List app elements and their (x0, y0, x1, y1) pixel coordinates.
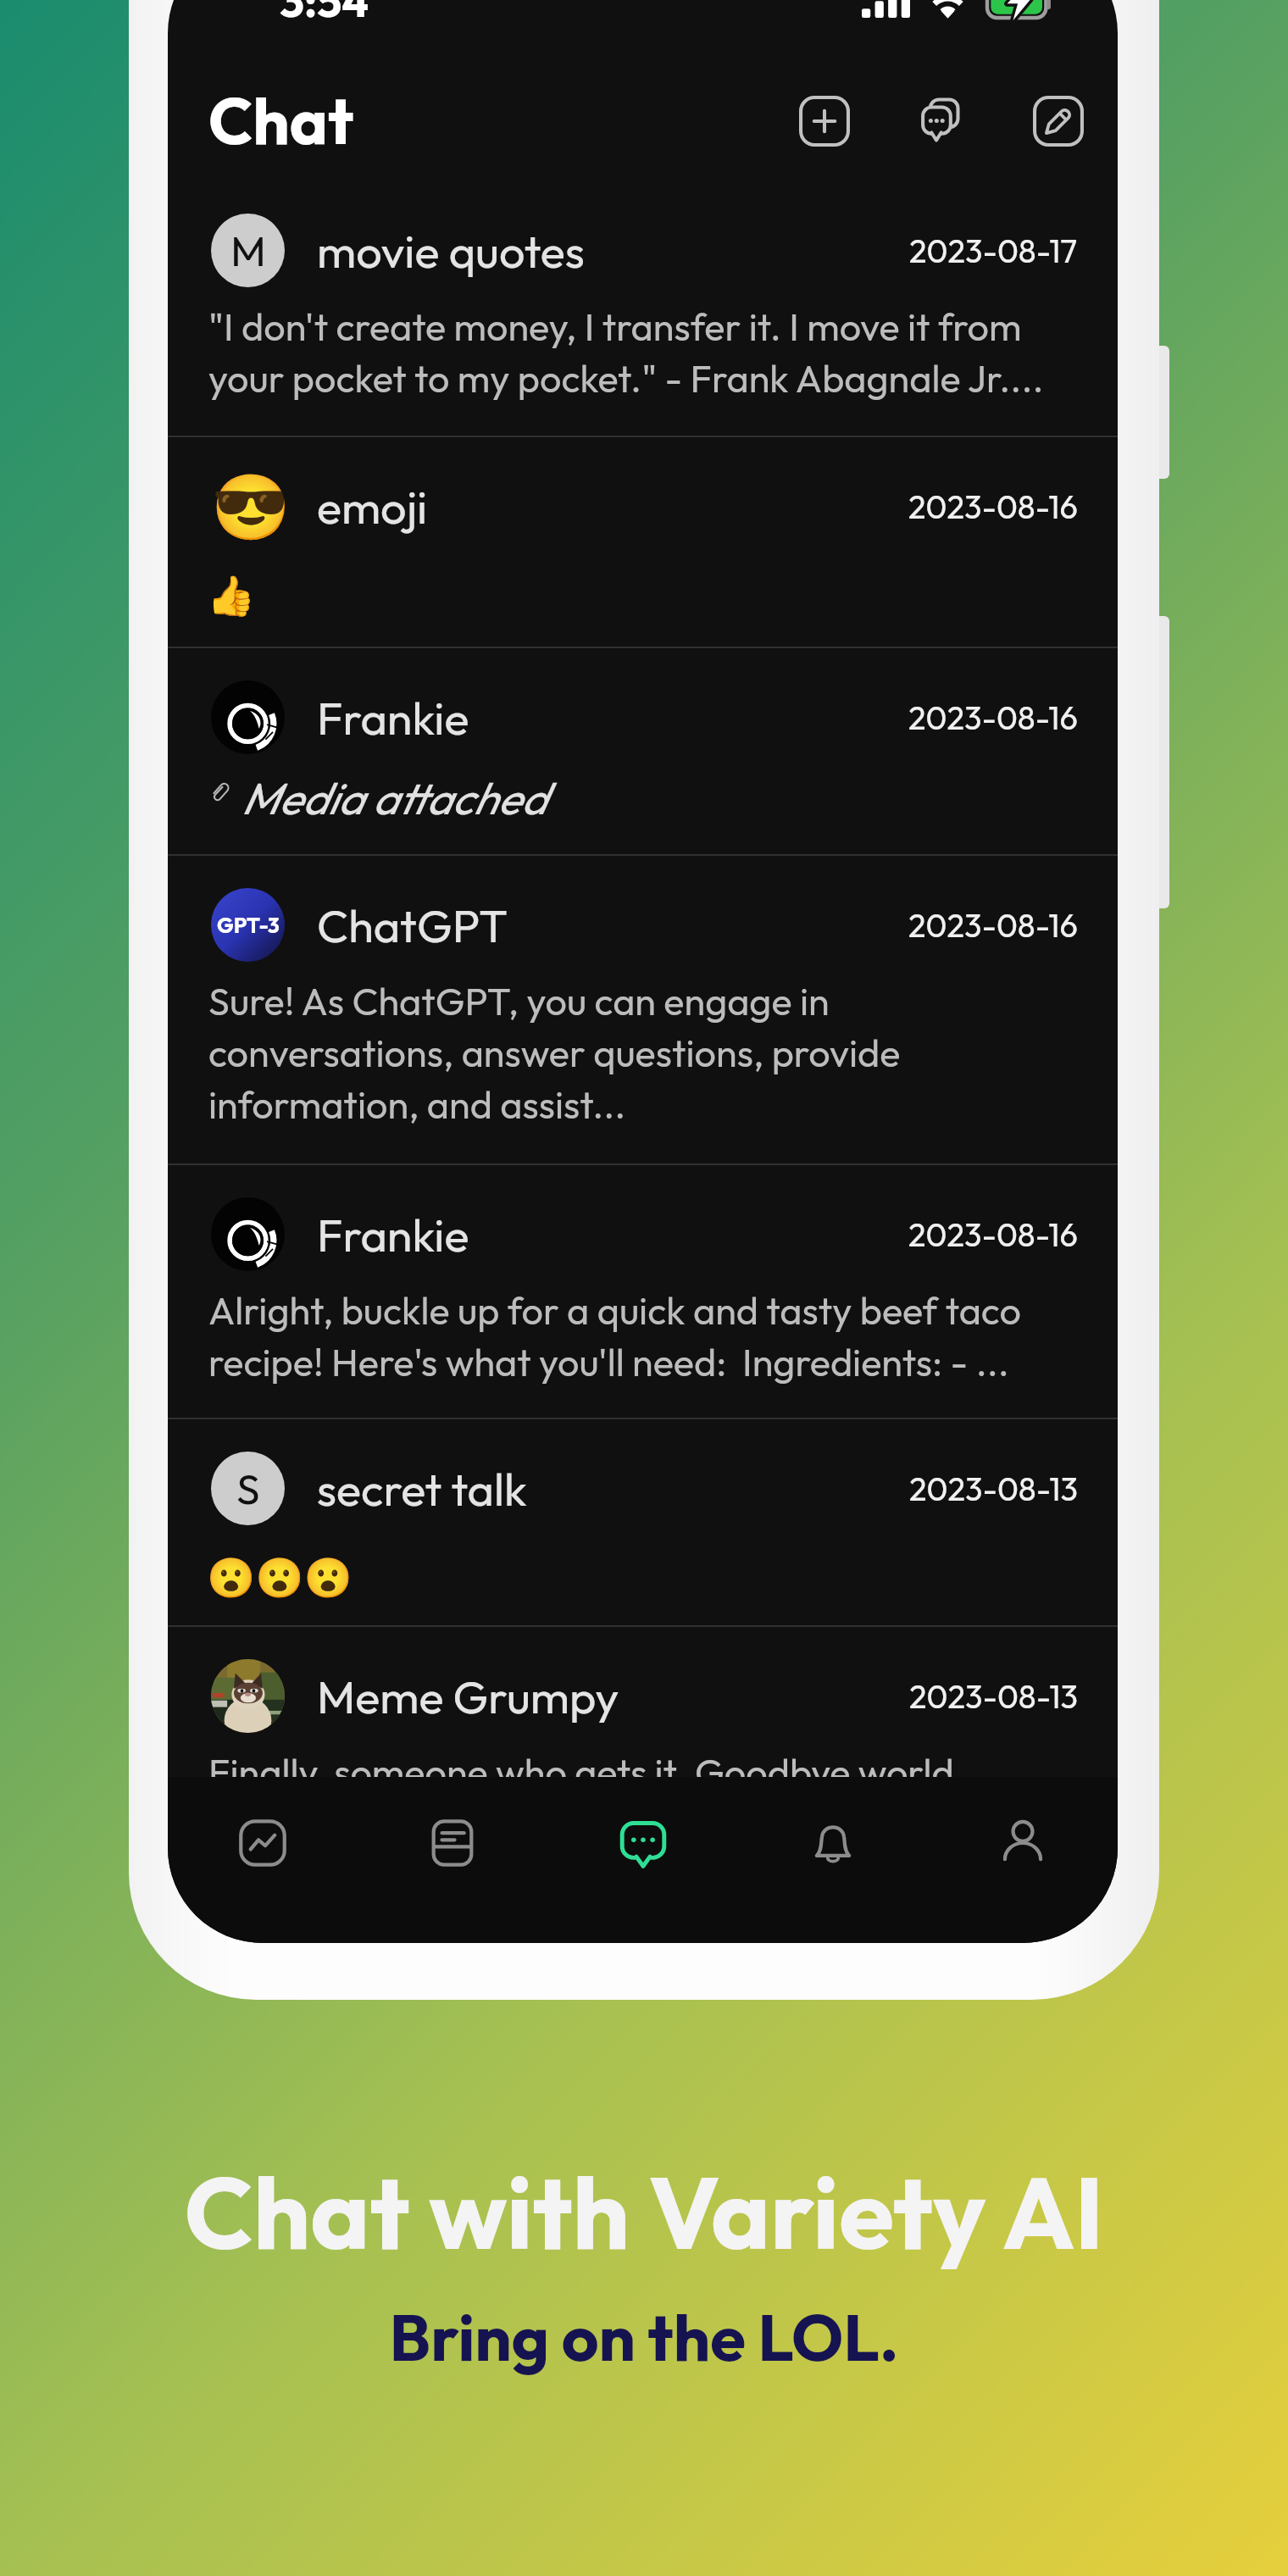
staticText: movie quotes (317, 222, 585, 280)
staticText: Bring on the LOL. (389, 2296, 899, 2378)
staticText: Meme Grumpy (317, 1668, 619, 1725)
staticText: GPT-3 (217, 912, 280, 939)
staticText: Frankie (317, 1206, 469, 1263)
staticText: Chat with Variety AI (184, 2149, 1104, 2275)
button[interactable]: Profile (953, 1777, 1092, 1943)
button[interactable]: 😎 (168, 437, 1118, 648)
staticText: Chat (208, 80, 354, 161)
staticText: Alright, buckle up for a quick and tasty… (208, 1286, 1078, 1386)
staticText: 2023-08-13 (909, 1676, 1078, 1717)
staticText: Finally, someone who gets it. Goodbye wo… (208, 1748, 965, 1796)
staticText: 2023-08-16 (908, 1214, 1078, 1255)
button[interactable]: Notifications (763, 1777, 902, 1943)
staticText: 👍 (207, 573, 256, 619)
staticText: Frankie (317, 689, 469, 747)
staticText: 😮😮😮 (207, 1555, 353, 1601)
staticText: M (230, 224, 266, 277)
staticText: "I don't create money, I transfer it. I … (208, 303, 1078, 402)
button[interactable]: Frankie (168, 1165, 1118, 1419)
staticText: 2023-08-13 (909, 1468, 1078, 1509)
button[interactable]: Feed (383, 1777, 522, 1943)
button[interactable]: Messages (916, 96, 967, 147)
staticText: 😎 (211, 469, 285, 543)
button[interactable]: Frankie (168, 648, 1118, 856)
staticText: emoji (317, 478, 428, 536)
staticText: Media attached (241, 770, 547, 826)
button[interactable]: Meme Grumpy (168, 1627, 1118, 1943)
button[interactable]: Add chat (799, 96, 850, 147)
staticText: 2023-08-16 (908, 905, 1078, 946)
staticText: 3:54 (280, 0, 369, 29)
staticText: 2023-08-16 (908, 486, 1078, 527)
button[interactable]: M (168, 181, 1118, 437)
staticText: 2023-08-16 (908, 697, 1078, 738)
staticText: secret talk (317, 1460, 527, 1518)
button[interactable]: Activity (193, 1777, 332, 1943)
staticText: 2023-08-17 (909, 230, 1078, 271)
staticText: S (236, 1462, 260, 1515)
button[interactable]: Compose (1033, 96, 1084, 147)
staticText: ChatGPT (317, 897, 508, 954)
button[interactable]: GPT-3 (168, 856, 1118, 1165)
button[interactable]: Chats (574, 1777, 713, 1943)
staticText: Sure! As ChatGPT, you can engage in conv… (208, 977, 1078, 1129)
button[interactable]: S (168, 1419, 1118, 1627)
